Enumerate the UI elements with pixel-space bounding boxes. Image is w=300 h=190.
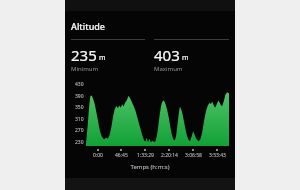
button[interactable]: Altitude xyxy=(71,20,106,32)
staticText: Minimum xyxy=(71,65,99,73)
staticText: 2:20:14 xyxy=(161,152,178,159)
staticText: 235 xyxy=(71,45,97,65)
staticText: 310 xyxy=(75,116,84,123)
staticText: Temps (h:m:s) xyxy=(71,163,229,171)
other: Altitude profile chart xyxy=(71,81,229,163)
staticText: 230 xyxy=(75,139,84,146)
staticText: 3:53:43 xyxy=(209,152,226,159)
button[interactable]: 235 xyxy=(71,39,145,73)
button[interactable]: 403 xyxy=(154,39,229,73)
staticText: 46:45 xyxy=(115,152,128,159)
staticText: Maximum xyxy=(154,65,183,73)
staticText: 1:33:29 xyxy=(137,152,154,159)
staticText: 0:00 xyxy=(93,152,103,159)
staticText: 390 xyxy=(75,93,84,100)
staticText: m xyxy=(182,53,189,63)
staticText: 403 xyxy=(154,45,180,65)
staticText: 3:06:58 xyxy=(185,152,202,159)
staticText: 350 xyxy=(75,104,84,111)
staticText: m xyxy=(99,53,106,63)
staticText: 430 xyxy=(75,81,84,88)
staticText: 270 xyxy=(75,127,84,134)
